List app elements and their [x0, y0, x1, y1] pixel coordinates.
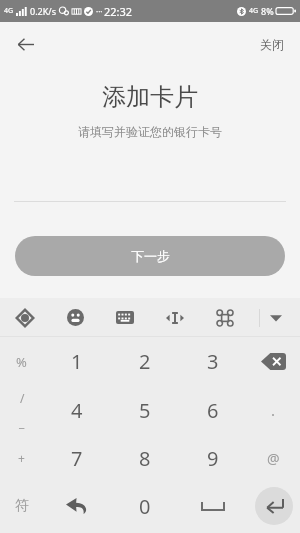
- button[interactable]: 4: [43, 386, 111, 434]
- button[interactable]: /: [0, 386, 43, 434]
- button[interactable]: 9: [179, 434, 247, 482]
- button[interactable]: Space: [179, 482, 247, 530]
- staticText: 9: [207, 445, 219, 472]
- staticText: 4G: [4, 6, 14, 16]
- staticText: 8: [139, 445, 151, 472]
- staticText: .: [271, 400, 276, 420]
- staticText: 0.2K/s: [30, 5, 56, 17]
- button[interactable]: Emoji: [50, 298, 100, 337]
- staticText: 8%: [261, 5, 274, 17]
- button[interactable]: Sogou input: [0, 298, 50, 337]
- staticText: 6: [207, 397, 219, 424]
- staticText: 1: [71, 348, 83, 375]
- button[interactable]: %: [0, 337, 43, 386]
- staticText: 4: [71, 397, 83, 424]
- button[interactable]: 8: [111, 434, 179, 482]
- staticText: 5: [139, 397, 151, 424]
- staticText: 下一步: [131, 248, 170, 264]
- staticText: ···: [96, 6, 103, 17]
- button[interactable]: Move cursor: [150, 298, 200, 337]
- button[interactable]: 关闭: [254, 31, 290, 58]
- staticText: 添加卡片: [0, 82, 300, 112]
- staticText: 关闭: [260, 37, 284, 52]
- button[interactable]: Return: [43, 482, 111, 530]
- staticText: 请填写并验证您的银行卡号: [0, 124, 300, 139]
- button[interactable]: 3: [179, 337, 247, 386]
- button[interactable]: +: [0, 434, 43, 482]
- button[interactable]: Enter: [255, 487, 293, 525]
- staticText: %: [16, 353, 27, 371]
- staticText: 3: [207, 348, 219, 375]
- button[interactable]: Hide keyboard: [260, 298, 292, 337]
- button[interactable]: 5: [111, 386, 179, 434]
- staticText: +: [18, 450, 25, 466]
- staticText: _: [19, 414, 25, 430]
- button[interactable]: Backspace: [247, 337, 300, 386]
- button[interactable]: 7: [43, 434, 111, 482]
- staticText: 4G: [249, 6, 259, 16]
- button[interactable]: Keyboard layout: [100, 298, 150, 337]
- staticText: 符: [15, 497, 29, 515]
- button[interactable]: Settings: [200, 298, 250, 337]
- staticText: 2: [139, 348, 151, 375]
- staticText: 0: [139, 493, 151, 520]
- staticText: 22:32: [104, 4, 133, 19]
- staticText: 7: [71, 445, 83, 472]
- button[interactable]: @: [247, 434, 300, 482]
- button[interactable]: 0: [111, 482, 179, 530]
- button[interactable]: 6: [179, 386, 247, 434]
- button[interactable]: 2: [111, 337, 179, 386]
- staticText: @: [267, 449, 280, 468]
- staticText: /: [20, 390, 25, 406]
- button[interactable]: Back: [8, 27, 42, 61]
- button[interactable]: 下一步: [15, 236, 285, 276]
- button[interactable]: 符: [0, 482, 43, 530]
- button[interactable]: 1: [43, 337, 111, 386]
